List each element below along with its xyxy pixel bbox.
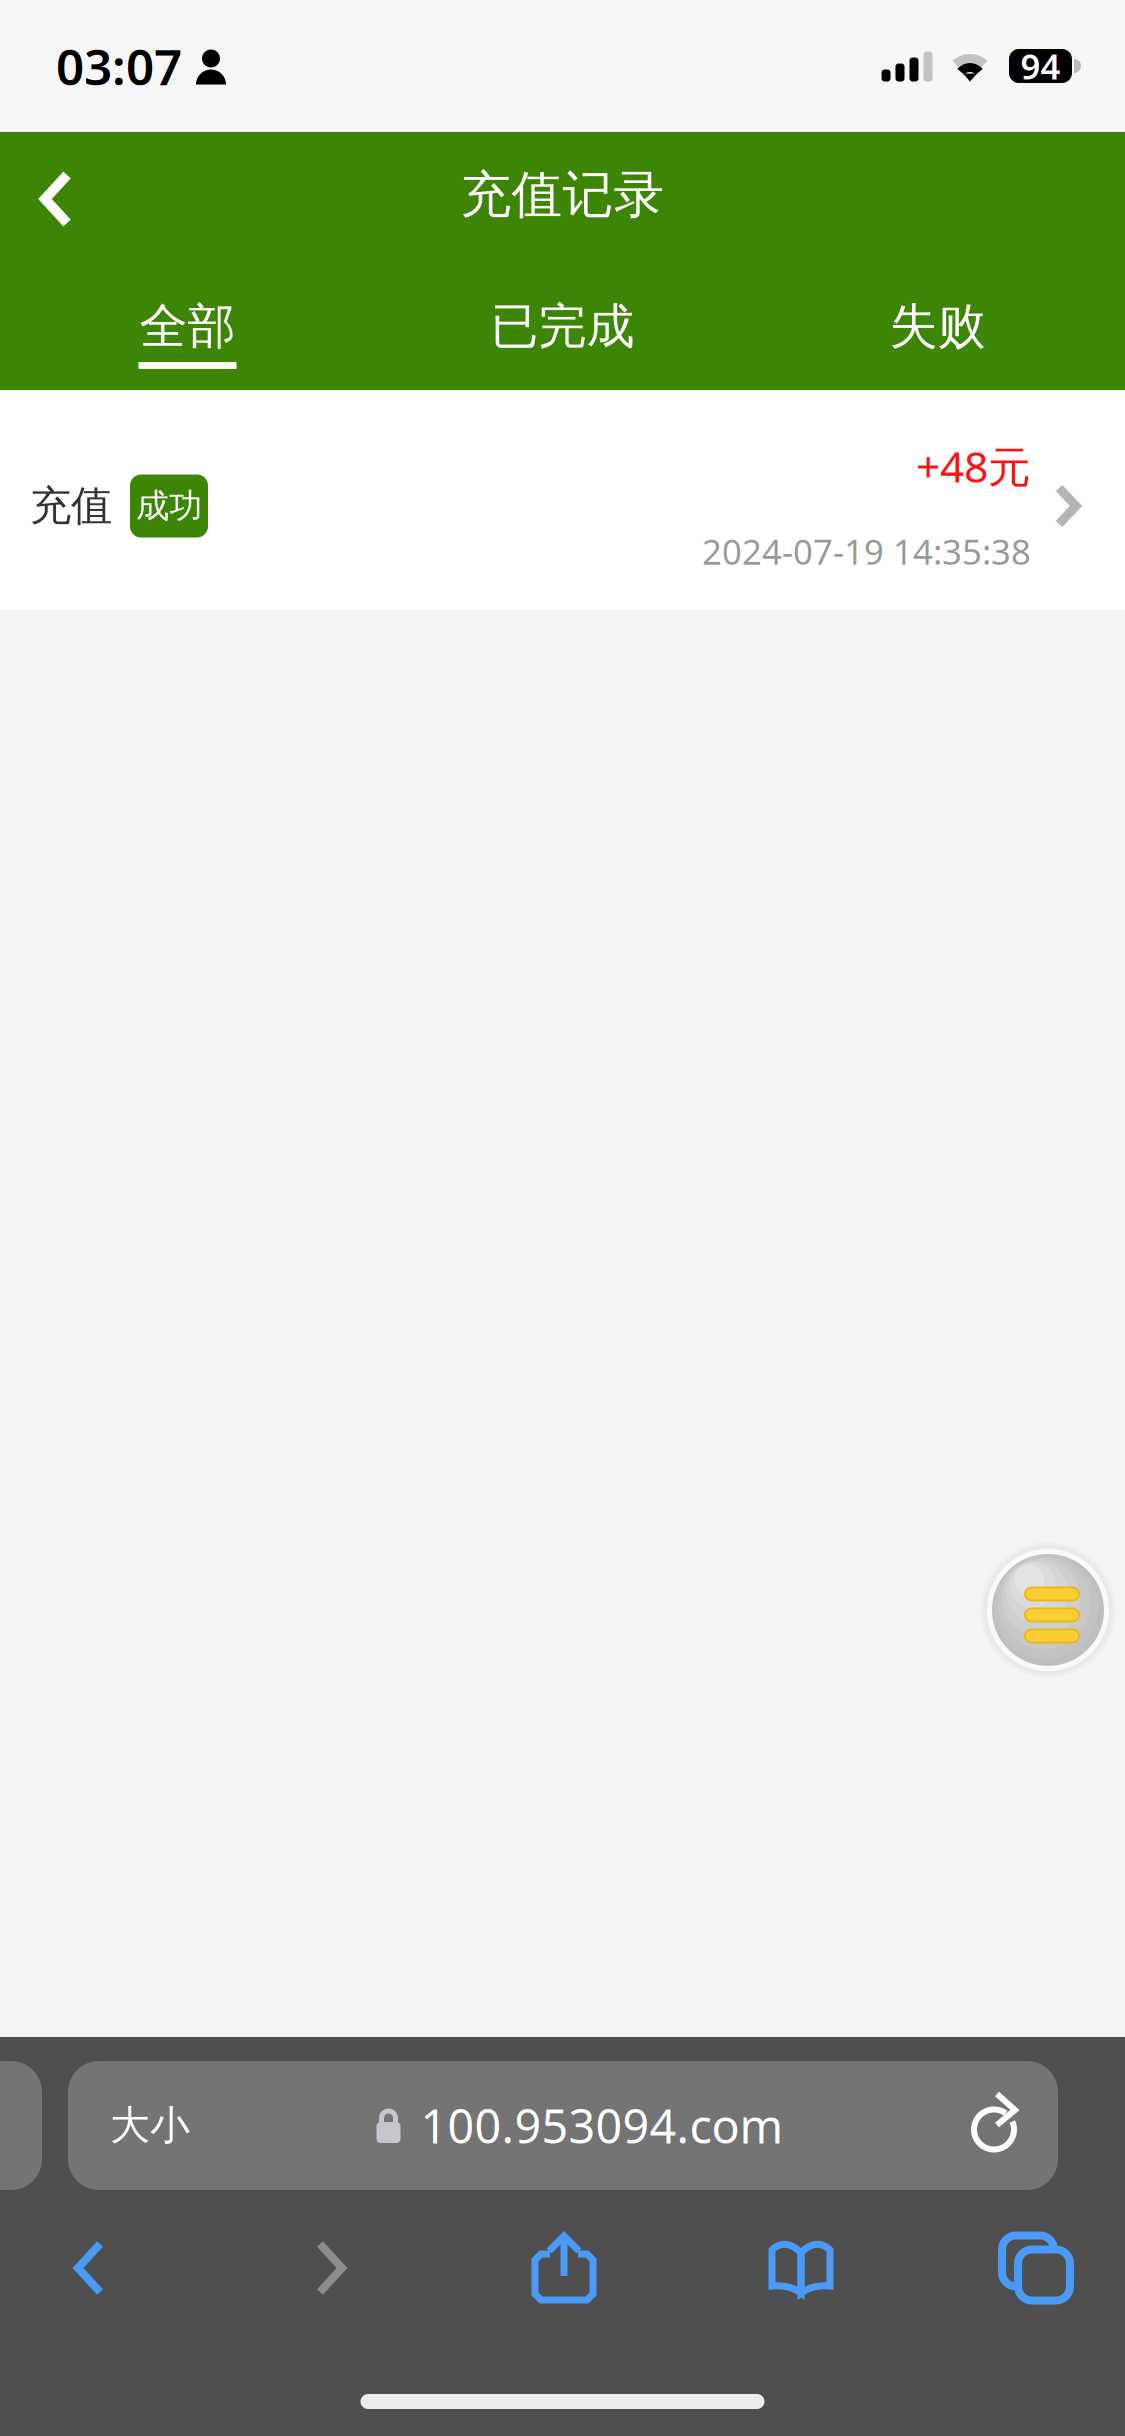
button[interactable]: 失败: [750, 258, 1125, 390]
button[interactable]: Back: [2, 2228, 176, 2308]
staticText: 03:07: [56, 33, 182, 99]
staticText: 全部: [139, 297, 235, 356]
button[interactable]: Tabs: [949, 2228, 1123, 2308]
button[interactable]: Bookmarks: [714, 2228, 888, 2308]
button[interactable]: 大小: [68, 2061, 1058, 2190]
staticText: 失败: [889, 297, 985, 356]
staticText: 大小: [110, 2101, 190, 2150]
staticText: +48元: [916, 438, 1031, 494]
staticText: 2024-07-19 14:35:38: [702, 528, 1031, 574]
staticText: 成功: [136, 485, 202, 526]
button[interactable]: 充值: [0, 390, 1125, 610]
button[interactable]: 已完成: [375, 258, 750, 390]
button[interactable]: 全部: [0, 258, 375, 390]
staticText: 充值: [30, 481, 112, 531]
staticText: 已完成: [490, 297, 634, 356]
button[interactable]: Share: [477, 2228, 651, 2308]
staticText: 100.953094.com: [420, 2094, 783, 2156]
button[interactable]: Forward: [244, 2228, 418, 2308]
staticText: 充值记录: [460, 164, 664, 226]
button[interactable]: Menu: [978, 1540, 1118, 1680]
staticText: 94: [1020, 43, 1060, 89]
button[interactable]: Back: [0, 132, 112, 258]
